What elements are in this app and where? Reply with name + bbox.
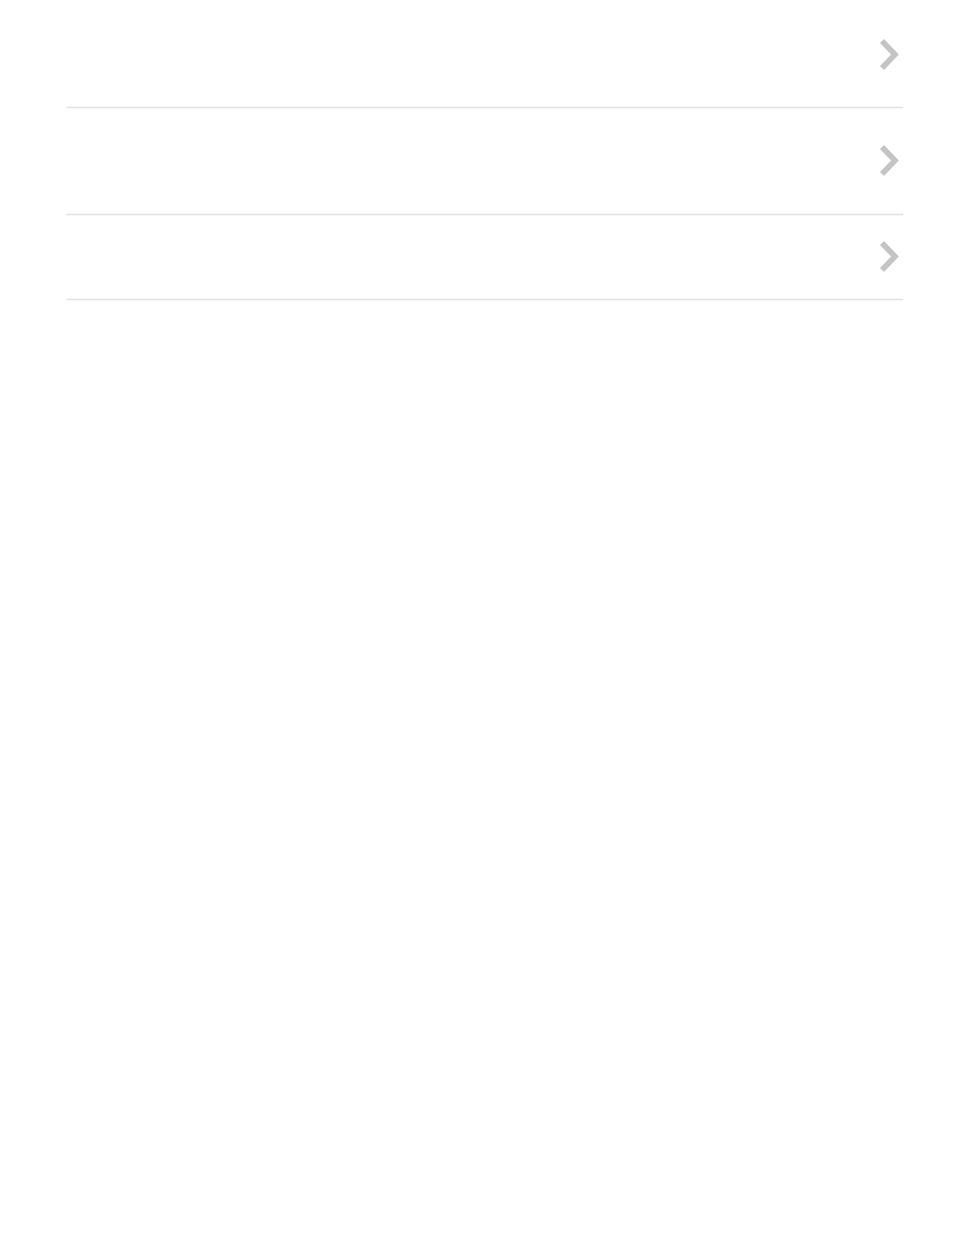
button[interactable]: Open item 3	[0, 215, 954, 298]
